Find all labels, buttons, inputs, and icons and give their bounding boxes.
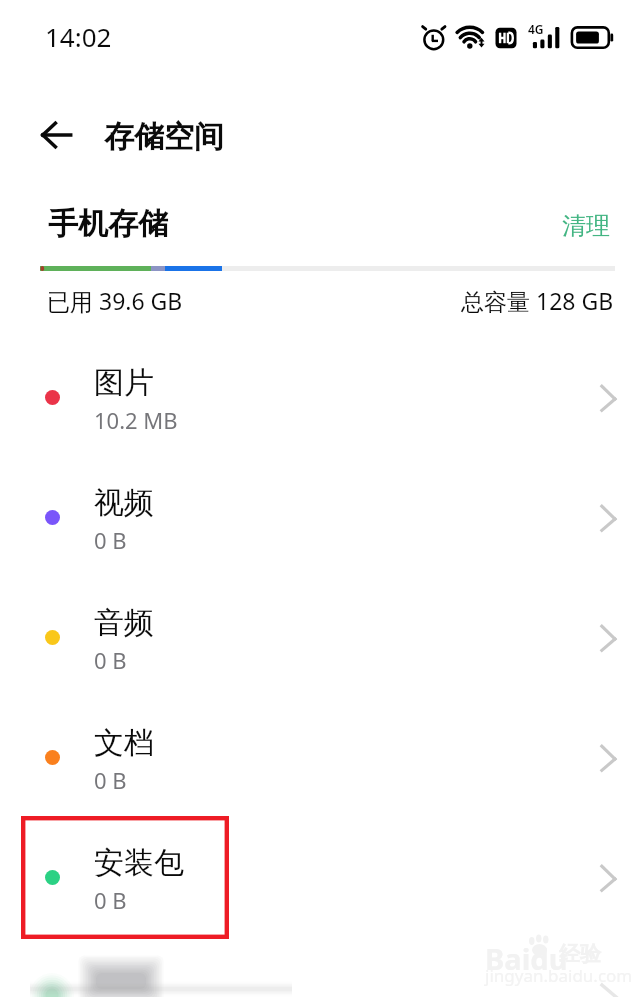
- button[interactable]: 音频: [0, 578, 634, 698]
- staticText: 安装包: [94, 844, 184, 882]
- staticText: 存储空间: [104, 118, 224, 156]
- staticText: 10.2 MB: [94, 405, 178, 435]
- staticText: 视频: [94, 484, 154, 522]
- staticText: 音频: [94, 604, 154, 642]
- staticText: 经验: [559, 941, 601, 967]
- staticText: 清理: [562, 211, 610, 241]
- staticText: 0 B: [94, 885, 127, 915]
- button[interactable]: 安装包: [0, 818, 634, 938]
- staticText: 手机存储: [48, 205, 168, 243]
- button[interactable]: 视频: [0, 458, 634, 578]
- staticText: 文档: [94, 724, 154, 762]
- staticText: jingyan.baidu.com: [485, 964, 633, 987]
- staticText: 0 B: [94, 645, 127, 675]
- staticText: 14:02: [45, 19, 112, 54]
- staticText: 0 B: [94, 525, 127, 555]
- staticText: 0 B: [94, 765, 127, 795]
- staticText: 图片: [94, 364, 154, 402]
- staticText: Baidu: [485, 939, 568, 978]
- button[interactable]: 文档: [0, 698, 634, 818]
- button[interactable]: Back: [28, 108, 86, 162]
- staticText: 已用 39.6 GB: [47, 285, 183, 316]
- button[interactable]: 清理: [552, 205, 620, 247]
- staticText: 4G: [528, 21, 544, 37]
- button[interactable]: 图片: [0, 338, 634, 458]
- staticText: 总容量 128 GB: [461, 285, 614, 316]
